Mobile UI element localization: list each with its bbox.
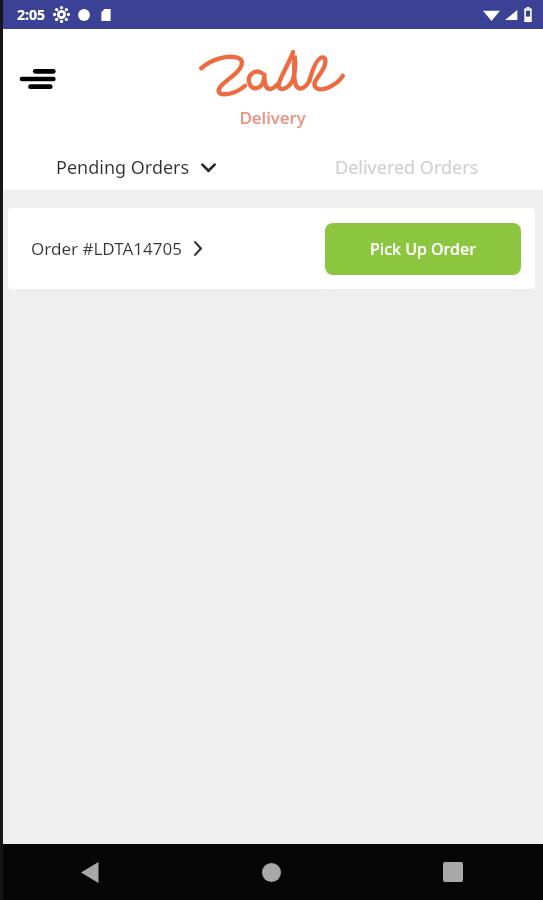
- staticText: 2:05: [17, 5, 45, 24]
- staticText: Pending Orders: [56, 155, 190, 180]
- button[interactable]: Open navigation menu: [10, 51, 66, 107]
- button[interactable]: Delivered Orders: [271, 145, 543, 190]
- staticText: Order #LDTA14705: [31, 237, 182, 260]
- staticText: Delivery: [239, 106, 306, 129]
- button[interactable]: Back: [0, 844, 181, 900]
- staticText: Pick Up Order: [370, 238, 476, 260]
- button[interactable]: Order #LDTA14705: [8, 208, 535, 289]
- staticText: Delivered Orders: [335, 155, 479, 180]
- button[interactable]: Recent apps: [362, 844, 543, 900]
- button[interactable]: Pick Up Order: [325, 223, 521, 275]
- button[interactable]: Pending Orders: [0, 145, 271, 190]
- button[interactable]: Home: [181, 844, 362, 900]
